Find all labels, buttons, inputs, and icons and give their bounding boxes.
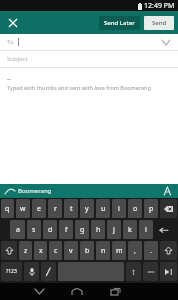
button[interactable]: b <box>80 241 94 260</box>
staticText: Typed with thumbs and sent with love fro… <box>7 84 151 91</box>
button[interactable]: Next field <box>160 262 177 281</box>
button[interactable]: a <box>10 220 25 239</box>
staticText: q <box>5 204 10 214</box>
staticText: y <box>85 204 89 214</box>
staticText: Subject <box>7 55 28 63</box>
button[interactable]: p <box>144 199 158 218</box>
button[interactable]: Boomerang <box>0 184 178 198</box>
staticText: e <box>37 204 41 214</box>
staticText: To <box>7 38 14 46</box>
staticText: l <box>145 225 147 235</box>
button[interactable]: n <box>96 241 110 260</box>
button[interactable]: Voice input <box>24 262 39 281</box>
button[interactable]: f <box>59 220 73 239</box>
staticText: k <box>128 225 132 235</box>
staticText: Send <box>152 19 167 27</box>
staticText: r <box>54 204 57 214</box>
button[interactable]: Recent apps <box>102 284 128 299</box>
button[interactable]: m <box>112 241 126 260</box>
staticText: a <box>16 225 20 235</box>
button[interactable]: w <box>16 199 30 218</box>
button[interactable]: ?123 <box>1 262 22 281</box>
staticText: ?123 <box>6 268 17 275</box>
button[interactable]: To <box>0 34 178 50</box>
button[interactable]: Handwriting <box>41 262 56 281</box>
button[interactable]: Keyboard options <box>161 185 173 197</box>
button[interactable]: Home <box>64 284 90 299</box>
staticText: j <box>113 225 115 235</box>
staticText: . <box>150 246 152 256</box>
staticText: d <box>48 225 53 235</box>
staticText: z <box>24 246 28 256</box>
button[interactable]: h <box>91 220 105 239</box>
button[interactable]: k <box>123 220 137 239</box>
staticText: Send Later <box>104 19 135 27</box>
staticText: g <box>80 225 85 235</box>
staticText: c <box>54 246 58 256</box>
staticText: n <box>101 246 106 256</box>
staticText: i <box>118 204 120 214</box>
button[interactable]: y <box>80 199 94 218</box>
staticText: s <box>32 225 36 235</box>
button[interactable]: t <box>64 199 78 218</box>
button[interactable]: , <box>128 241 142 260</box>
staticText: 12:49 PM <box>144 1 175 11</box>
button[interactable]: v <box>64 241 78 260</box>
button[interactable]: Enter <box>155 220 172 239</box>
staticText: v <box>69 246 73 256</box>
button[interactable]: d <box>43 220 57 239</box>
button[interactable]: . <box>144 241 158 260</box>
button[interactable]: Backspace <box>160 199 177 218</box>
staticText: x <box>39 246 43 256</box>
button[interactable]: l <box>139 220 153 239</box>
staticText: u <box>101 204 106 214</box>
staticText: b <box>85 246 90 256</box>
button[interactable]: Send <box>144 16 174 30</box>
staticText: p <box>149 204 154 214</box>
staticText: h <box>96 225 101 235</box>
button[interactable]: o <box>128 199 142 218</box>
button[interactable]: Subject <box>0 51 178 67</box>
button[interactable]: Hide keyboard <box>26 284 52 299</box>
button[interactable]: Typed with thumbs and sent with love fro… <box>7 79 171 91</box>
button[interactable]: u <box>96 199 110 218</box>
button[interactable]: Close <box>4 14 22 32</box>
staticText: t <box>70 204 73 214</box>
button[interactable]: s <box>27 220 41 239</box>
button[interactable]: Settings <box>143 262 158 281</box>
button[interactable]: Send Later <box>99 16 140 30</box>
button[interactable]: z <box>19 241 32 260</box>
staticText: w <box>20 204 26 214</box>
staticText: f <box>65 225 68 235</box>
staticText: m <box>116 246 123 256</box>
button[interactable]: c <box>49 241 62 260</box>
button[interactable]: Show more recipient fields <box>159 35 173 49</box>
button[interactable]: r <box>48 199 62 218</box>
button[interactable]: x <box>34 241 47 260</box>
staticText: , <box>134 246 136 256</box>
staticText: o <box>133 204 138 214</box>
staticText: Boomerang <box>18 187 52 195</box>
button[interactable]: e <box>32 199 46 218</box>
button[interactable]: Shift <box>1 241 17 260</box>
button[interactable]: Shift <box>160 241 177 260</box>
button[interactable]: i <box>112 199 126 218</box>
button[interactable]: g <box>75 220 89 239</box>
button[interactable]: j <box>107 220 121 239</box>
button[interactable]: Emoji <box>126 262 141 281</box>
button[interactable]: q <box>1 199 14 218</box>
